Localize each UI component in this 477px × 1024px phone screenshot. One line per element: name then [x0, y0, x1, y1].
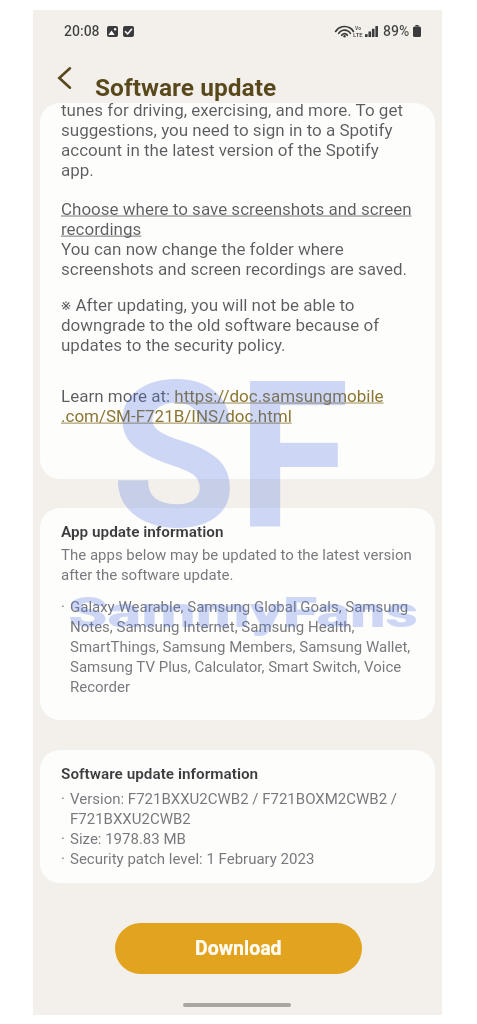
- staticText: Learn more at: https://doc.samsungmobile…: [61, 386, 384, 426]
- staticText: You can now change the folder where scre…: [61, 239, 413, 279]
- staticText: Download: [195, 937, 282, 960]
- staticText: Choose where to save screenshots and scr…: [61, 199, 413, 239]
- staticText: 20:08: [64, 23, 100, 39]
- staticText: Galaxy Wearable, Samsung Global Goals, S…: [70, 598, 413, 696]
- staticText: ※ After updating, you will not be able t…: [61, 295, 413, 355]
- staticText: LTE: [353, 31, 363, 38]
- staticText: ·: [61, 598, 70, 616]
- staticText: The apps below may be updated to the lat…: [61, 546, 413, 584]
- staticText: Software update information: [61, 765, 259, 783]
- button[interactable]: Download: [115, 923, 362, 974]
- staticText: Version: F721BXXU2CWB2 / F721BOXM2CWB2 /…: [70, 790, 413, 828]
- staticText: Security patch level: 1 February 2023: [70, 850, 315, 868]
- staticText: App update information: [61, 523, 224, 541]
- staticText: ·: [61, 830, 70, 848]
- staticText: Size: 1978.83 MB: [70, 830, 186, 848]
- staticText: ·: [61, 790, 70, 808]
- staticText: Software update: [95, 73, 277, 102]
- staticText: SammyFans: [68, 587, 419, 637]
- button[interactable]: Back: [42, 56, 86, 100]
- staticText: tunes for driving, exercising, and more.…: [61, 103, 413, 180]
- staticText: SF: [111, 336, 350, 576]
- staticText: ·: [61, 850, 70, 868]
- staticText: 89%: [383, 23, 410, 39]
- staticText: Vo: [355, 25, 361, 31]
